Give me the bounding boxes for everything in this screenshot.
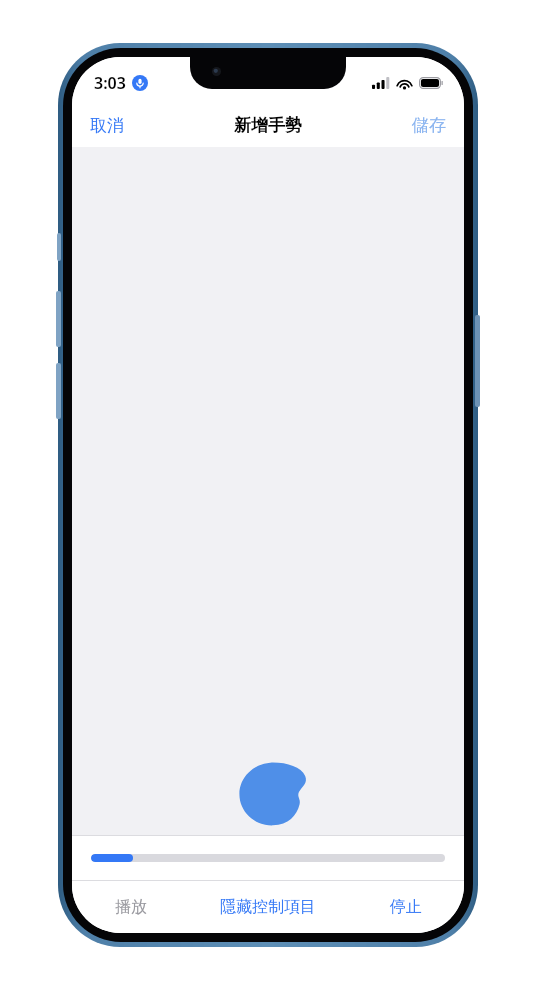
button[interactable]: 隱藏控制項目	[189, 881, 347, 933]
staticText: 儲存	[412, 115, 446, 136]
button[interactable]: 播放	[72, 881, 189, 933]
staticText: 隱藏控制項目	[220, 897, 316, 917]
button[interactable]: 停止	[347, 881, 464, 933]
staticText: 3:03	[94, 72, 126, 94]
staticText: 取消	[90, 115, 124, 136]
staticText: 播放	[115, 897, 147, 917]
staticText: 新增手勢	[234, 115, 302, 136]
staticText: 停止	[390, 897, 422, 917]
button[interactable]: 取消	[72, 107, 142, 144]
button[interactable]: 儲存	[394, 107, 464, 144]
